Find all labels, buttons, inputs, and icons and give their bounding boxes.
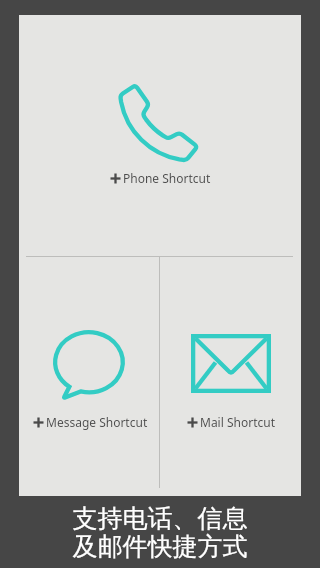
staticText: Mail Shortcut (200, 414, 275, 430)
staticText: 支持电话、信息 (0, 503, 320, 568)
staticText: Phone Shortcut (123, 170, 211, 186)
staticText: 及邮件快捷方式 (0, 531, 320, 568)
button[interactable]: Mail Shortcut (160, 257, 301, 496)
button[interactable]: Phone Shortcut (19, 15, 301, 256)
staticText: Message Shortcut (46, 414, 148, 430)
button[interactable]: Message Shortcut (19, 257, 159, 496)
